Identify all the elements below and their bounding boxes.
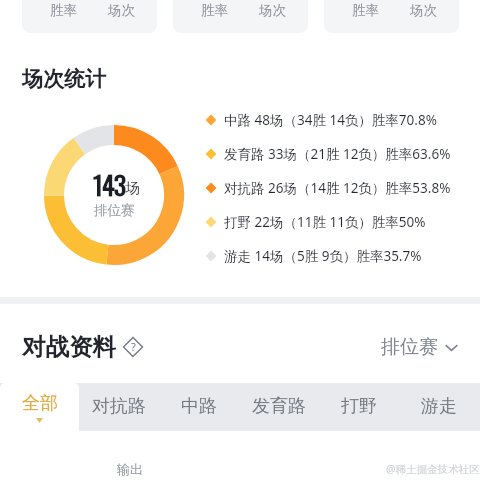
staticText: 胜率 bbox=[352, 2, 379, 19]
button[interactable]: 全部 bbox=[0, 383, 79, 431]
button[interactable]: 中路 bbox=[159, 383, 239, 431]
staticText: 场次 bbox=[259, 2, 286, 19]
staticText: 对战资料 bbox=[22, 332, 116, 362]
staticText: 发育路 33场（21胜 12负）胜率63.6% bbox=[224, 145, 451, 163]
staticText: 对抗路 bbox=[92, 395, 146, 418]
button[interactable]: 胜率 bbox=[324, 0, 459, 33]
staticText: 143 bbox=[93, 165, 126, 204]
staticText: @稀土掘金技术社区 bbox=[386, 462, 480, 476]
staticText: 发育路 bbox=[252, 395, 306, 418]
staticText: 排位赛 bbox=[94, 202, 135, 219]
staticText: 胜率 bbox=[50, 2, 77, 19]
staticText: 场次统计 bbox=[22, 66, 106, 92]
staticText: 游走 bbox=[421, 395, 457, 418]
button[interactable]: 说明 bbox=[122, 336, 144, 358]
button[interactable]: 对战资料 bbox=[22, 332, 144, 362]
staticText: 场次 bbox=[108, 2, 135, 19]
staticText: 场次 bbox=[410, 2, 437, 19]
button[interactable]: 对抗路 26场（14胜 12负）胜率53.8% bbox=[205, 171, 451, 205]
staticText: 中路 48场（34胜 14负）胜率70.8% bbox=[224, 111, 437, 129]
button[interactable]: 打野 22场（11胜 11负）胜率50% bbox=[205, 205, 426, 239]
button[interactable]: 打野 bbox=[319, 383, 399, 431]
staticText: 场 bbox=[125, 179, 140, 197]
staticText: 中路 bbox=[181, 395, 217, 418]
staticText: 打野 22场（11胜 11负）胜率50% bbox=[224, 213, 426, 231]
button[interactable]: 发育路 bbox=[239, 383, 319, 431]
staticText: 全部 bbox=[22, 392, 58, 415]
button[interactable]: 胜率 bbox=[22, 0, 157, 33]
staticText: ? bbox=[131, 339, 136, 354]
button[interactable]: 中路 48场（34胜 14负）胜率70.8% bbox=[205, 103, 437, 137]
staticText: 输出 bbox=[117, 461, 143, 477]
staticText: 打野 bbox=[341, 395, 377, 418]
staticText: 游走 14场（5胜 9负）胜率35.7% bbox=[224, 247, 422, 265]
staticText: 排位赛 bbox=[381, 335, 438, 359]
button[interactable]: 对抗路 bbox=[79, 383, 159, 431]
staticText: 胜率 bbox=[201, 2, 228, 19]
button[interactable]: 排位赛 bbox=[381, 335, 458, 359]
button[interactable]: 发育路 33场（21胜 12负）胜率63.6% bbox=[205, 137, 451, 171]
button[interactable]: 胜率 bbox=[173, 0, 308, 33]
button[interactable]: 游走 14场（5胜 9负）胜率35.7% bbox=[205, 239, 422, 273]
staticText: 对抗路 26场（14胜 12负）胜率53.8% bbox=[224, 179, 451, 197]
button[interactable]: 游走 bbox=[399, 383, 479, 431]
